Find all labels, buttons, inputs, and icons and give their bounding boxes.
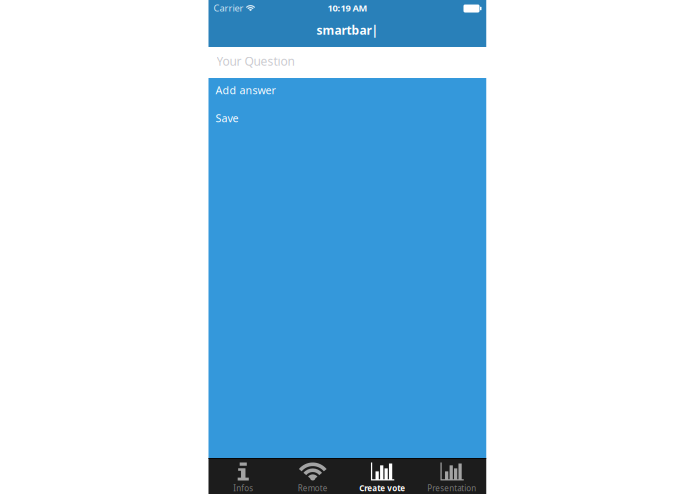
staticText: Remote [298,483,328,493]
button[interactable]: Presentation [417,458,486,494]
button[interactable]: Save [208,106,486,134]
staticText: Presentation [427,483,476,493]
staticText: Create vote [359,483,405,493]
staticText: smartbar| [316,22,378,38]
staticText: Your Question [216,53,294,69]
button[interactable]: Remote [278,458,347,494]
staticText: Infos [233,483,253,493]
button[interactable]: Your Question [208,47,486,78]
button[interactable]: Create vote [347,458,417,494]
staticText: Add answer [215,83,275,97]
button[interactable]: Infos [208,458,278,494]
button[interactable]: Add answer [208,78,486,106]
staticText: 10:19 AM [327,2,367,14]
staticText: Save [215,111,238,125]
staticText: Carrier [213,2,243,14]
